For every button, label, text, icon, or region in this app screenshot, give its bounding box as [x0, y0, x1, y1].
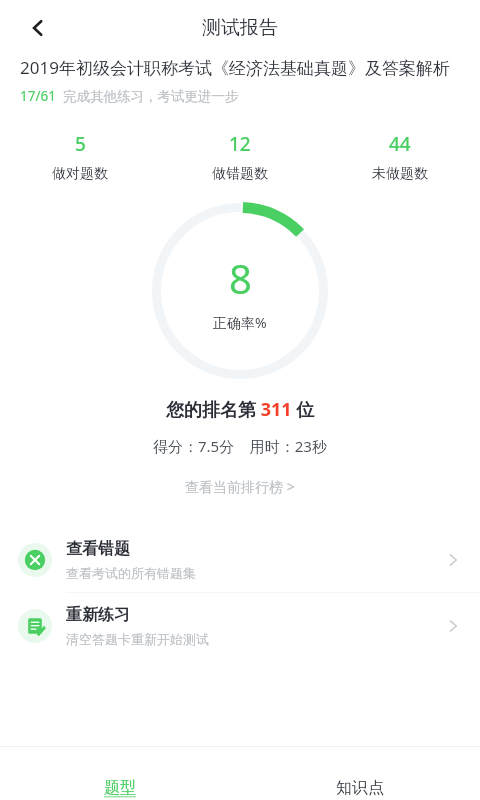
button[interactable]: 重新练习: [0, 593, 480, 658]
button[interactable]: 查看当前排行榜 >: [177, 474, 303, 499]
staticText: 未做题数: [372, 165, 428, 183]
staticText: 正确率%: [213, 313, 267, 332]
staticText: 12: [229, 131, 251, 157]
staticText: 8: [229, 251, 252, 305]
staticText: 5: [75, 131, 86, 157]
staticText: 清空答题卡重新开始测试: [66, 631, 209, 647]
staticText: 查看考试的所有错题集: [66, 565, 196, 581]
staticText: 查看当前排行榜 >: [185, 477, 295, 496]
button[interactable]: Back: [14, 4, 62, 52]
staticText: 2019年初级会计职称考试《经济法基础真题》及答案解析: [20, 56, 458, 79]
staticText: 17/61 完成其他练习，考试更进一步: [20, 87, 239, 105]
button[interactable]: 查看错题: [0, 527, 480, 592]
button[interactable]: 知识点: [240, 747, 480, 800]
staticText: 您的排名第 311 位: [166, 397, 315, 422]
staticText: 题型: [104, 778, 136, 798]
staticText: 查看错题: [66, 539, 130, 559]
staticText: 做对题数: [52, 165, 108, 183]
staticText: 得分：7.5分 用时：23秒: [153, 436, 327, 456]
staticText: 44: [389, 131, 411, 157]
staticText: 重新练习: [66, 605, 130, 625]
staticText: 做错题数: [212, 165, 268, 183]
button[interactable]: 题型: [0, 747, 240, 800]
staticText: 测试报告: [202, 16, 278, 40]
staticText: 知识点: [336, 778, 384, 798]
